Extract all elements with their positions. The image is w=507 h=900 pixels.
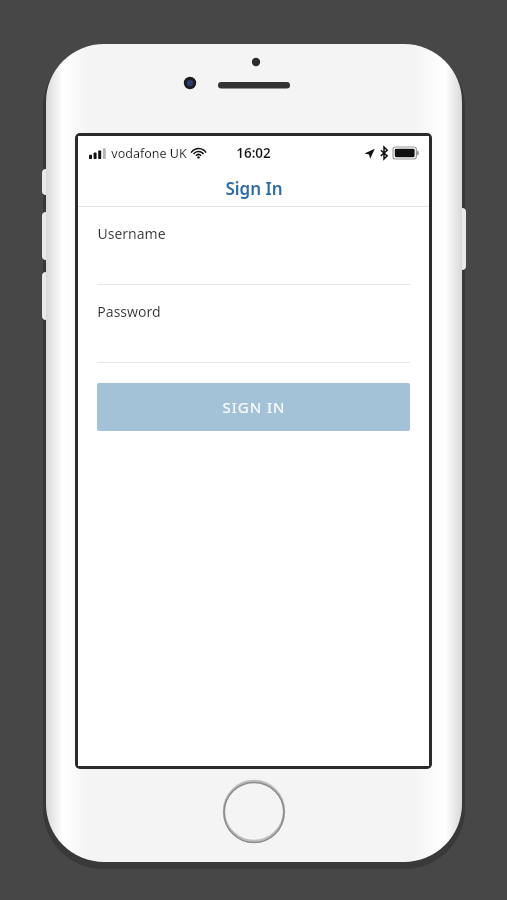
- button[interactable]: Username: [78, 207, 429, 285]
- staticText: Sign In: [225, 177, 283, 200]
- staticText: Password: [97, 302, 161, 321]
- staticText: vodafone UK: [111, 145, 187, 162]
- button[interactable]: Password: [78, 285, 429, 363]
- staticText: Username: [97, 224, 166, 243]
- staticText: 16:02: [236, 144, 271, 162]
- staticText: SIGN IN: [222, 397, 286, 417]
- button[interactable]: SIGN IN: [97, 383, 410, 431]
